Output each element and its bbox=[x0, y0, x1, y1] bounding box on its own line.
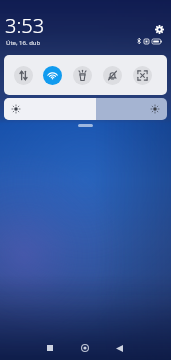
button[interactable]: Home bbox=[71, 334, 99, 360]
button[interactable]: Brightness bbox=[4, 98, 167, 120]
button[interactable]: Flashlight bbox=[73, 66, 92, 85]
button[interactable]: Back bbox=[105, 334, 133, 360]
button[interactable]: Mobile data bbox=[14, 66, 33, 85]
button[interactable]: Settings bbox=[151, 21, 168, 38]
staticText: Úte, 16. dub bbox=[6, 39, 41, 47]
button[interactable]: Recents bbox=[36, 334, 64, 360]
staticText: 3:53 bbox=[5, 12, 45, 39]
button[interactable]: Silent mode bbox=[103, 66, 122, 85]
button[interactable]: Screenshot bbox=[133, 66, 152, 85]
button[interactable]: Wi-Fi bbox=[43, 66, 62, 85]
